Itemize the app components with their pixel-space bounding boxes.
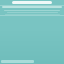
- button[interactable]: Primary item: [2, 6, 62, 8]
- button[interactable]: Title: [12, 1, 52, 4]
